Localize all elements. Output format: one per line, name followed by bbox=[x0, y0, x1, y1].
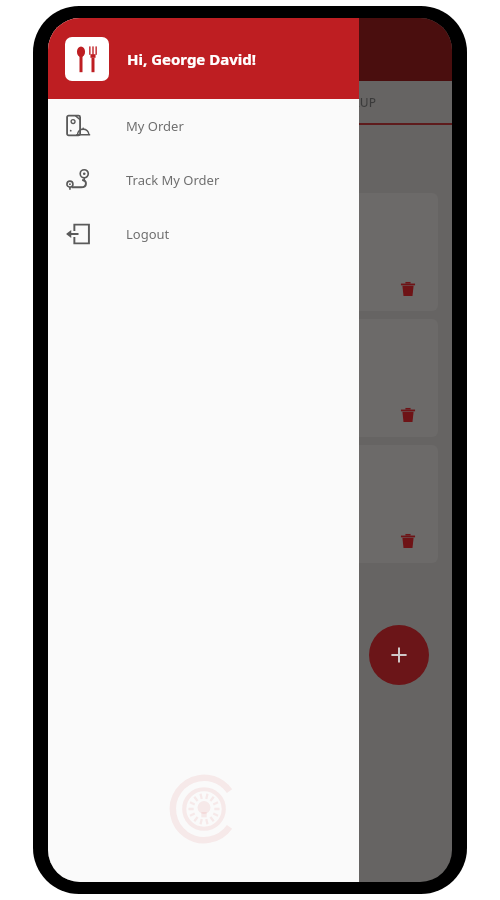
button[interactable]: Hi, George David! bbox=[48, 18, 359, 99]
staticText: Logout bbox=[126, 225, 170, 243]
staticText: Track My Order bbox=[126, 171, 220, 189]
button[interactable]: Delete bbox=[398, 531, 418, 551]
button[interactable]: Delete bbox=[398, 405, 418, 425]
button[interactable]: Delete bbox=[398, 279, 418, 299]
button[interactable]: Logout bbox=[48, 207, 359, 261]
button[interactable]: Delete bbox=[62, 193, 438, 311]
button[interactable]: DELIVERY bbox=[48, 81, 452, 123]
staticText: PICKUP bbox=[333, 94, 376, 110]
button[interactable]: Delete bbox=[62, 445, 438, 563]
button[interactable]: Delete bbox=[62, 319, 438, 437]
button[interactable]: Track My Order bbox=[48, 153, 359, 207]
staticText: DELIVERY bbox=[125, 94, 180, 110]
button[interactable]: My Order bbox=[48, 99, 359, 153]
button[interactable]: Add bbox=[369, 625, 429, 685]
staticText: Hi, George David! bbox=[127, 49, 256, 69]
staticText: My Order bbox=[126, 117, 184, 135]
